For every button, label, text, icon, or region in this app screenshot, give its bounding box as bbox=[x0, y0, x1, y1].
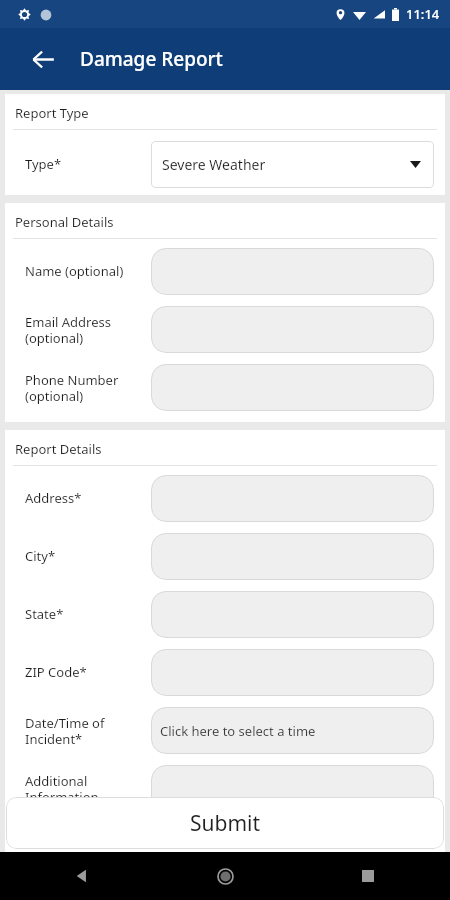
staticText: Personal Details bbox=[15, 213, 114, 231]
button[interactable]: Severe Weather bbox=[151, 141, 434, 188]
button[interactable] bbox=[151, 591, 434, 638]
staticText: ZIP Code* bbox=[25, 663, 145, 681]
staticText: City* bbox=[25, 547, 145, 565]
button[interactable] bbox=[151, 475, 434, 522]
staticText: Name (optional) bbox=[25, 262, 145, 280]
button[interactable] bbox=[151, 364, 434, 411]
button[interactable]: Click here to select a time bbox=[151, 707, 434, 754]
staticText: Phone Number (optional) bbox=[25, 371, 145, 404]
button[interactable] bbox=[151, 533, 434, 580]
staticText: Report Details bbox=[15, 440, 102, 458]
staticText: 11:14 bbox=[406, 5, 440, 23]
staticText: Address* bbox=[25, 489, 145, 507]
staticText: Severe Weather bbox=[162, 155, 266, 174]
staticText: Damage Report bbox=[80, 46, 223, 72]
button[interactable] bbox=[151, 248, 434, 295]
button[interactable] bbox=[151, 306, 434, 353]
button[interactable]: Recents bbox=[348, 856, 388, 896]
staticText: Additional Information bbox=[25, 772, 145, 805]
staticText: State* bbox=[25, 605, 145, 623]
button[interactable]: Home bbox=[205, 856, 245, 896]
staticText: Type* bbox=[25, 155, 145, 173]
button[interactable] bbox=[151, 649, 434, 696]
staticText: Click here to select a time bbox=[160, 722, 316, 740]
button[interactable]: Back bbox=[62, 856, 102, 896]
button[interactable]: Back bbox=[20, 36, 66, 82]
staticText: Date/Time of Incident* bbox=[25, 714, 145, 747]
button[interactable]: Submit bbox=[6, 797, 444, 849]
button[interactable] bbox=[151, 765, 434, 812]
staticText: Report Type bbox=[15, 104, 89, 122]
staticText: Submit bbox=[190, 809, 261, 838]
staticText: Email Address (optional) bbox=[25, 313, 145, 346]
